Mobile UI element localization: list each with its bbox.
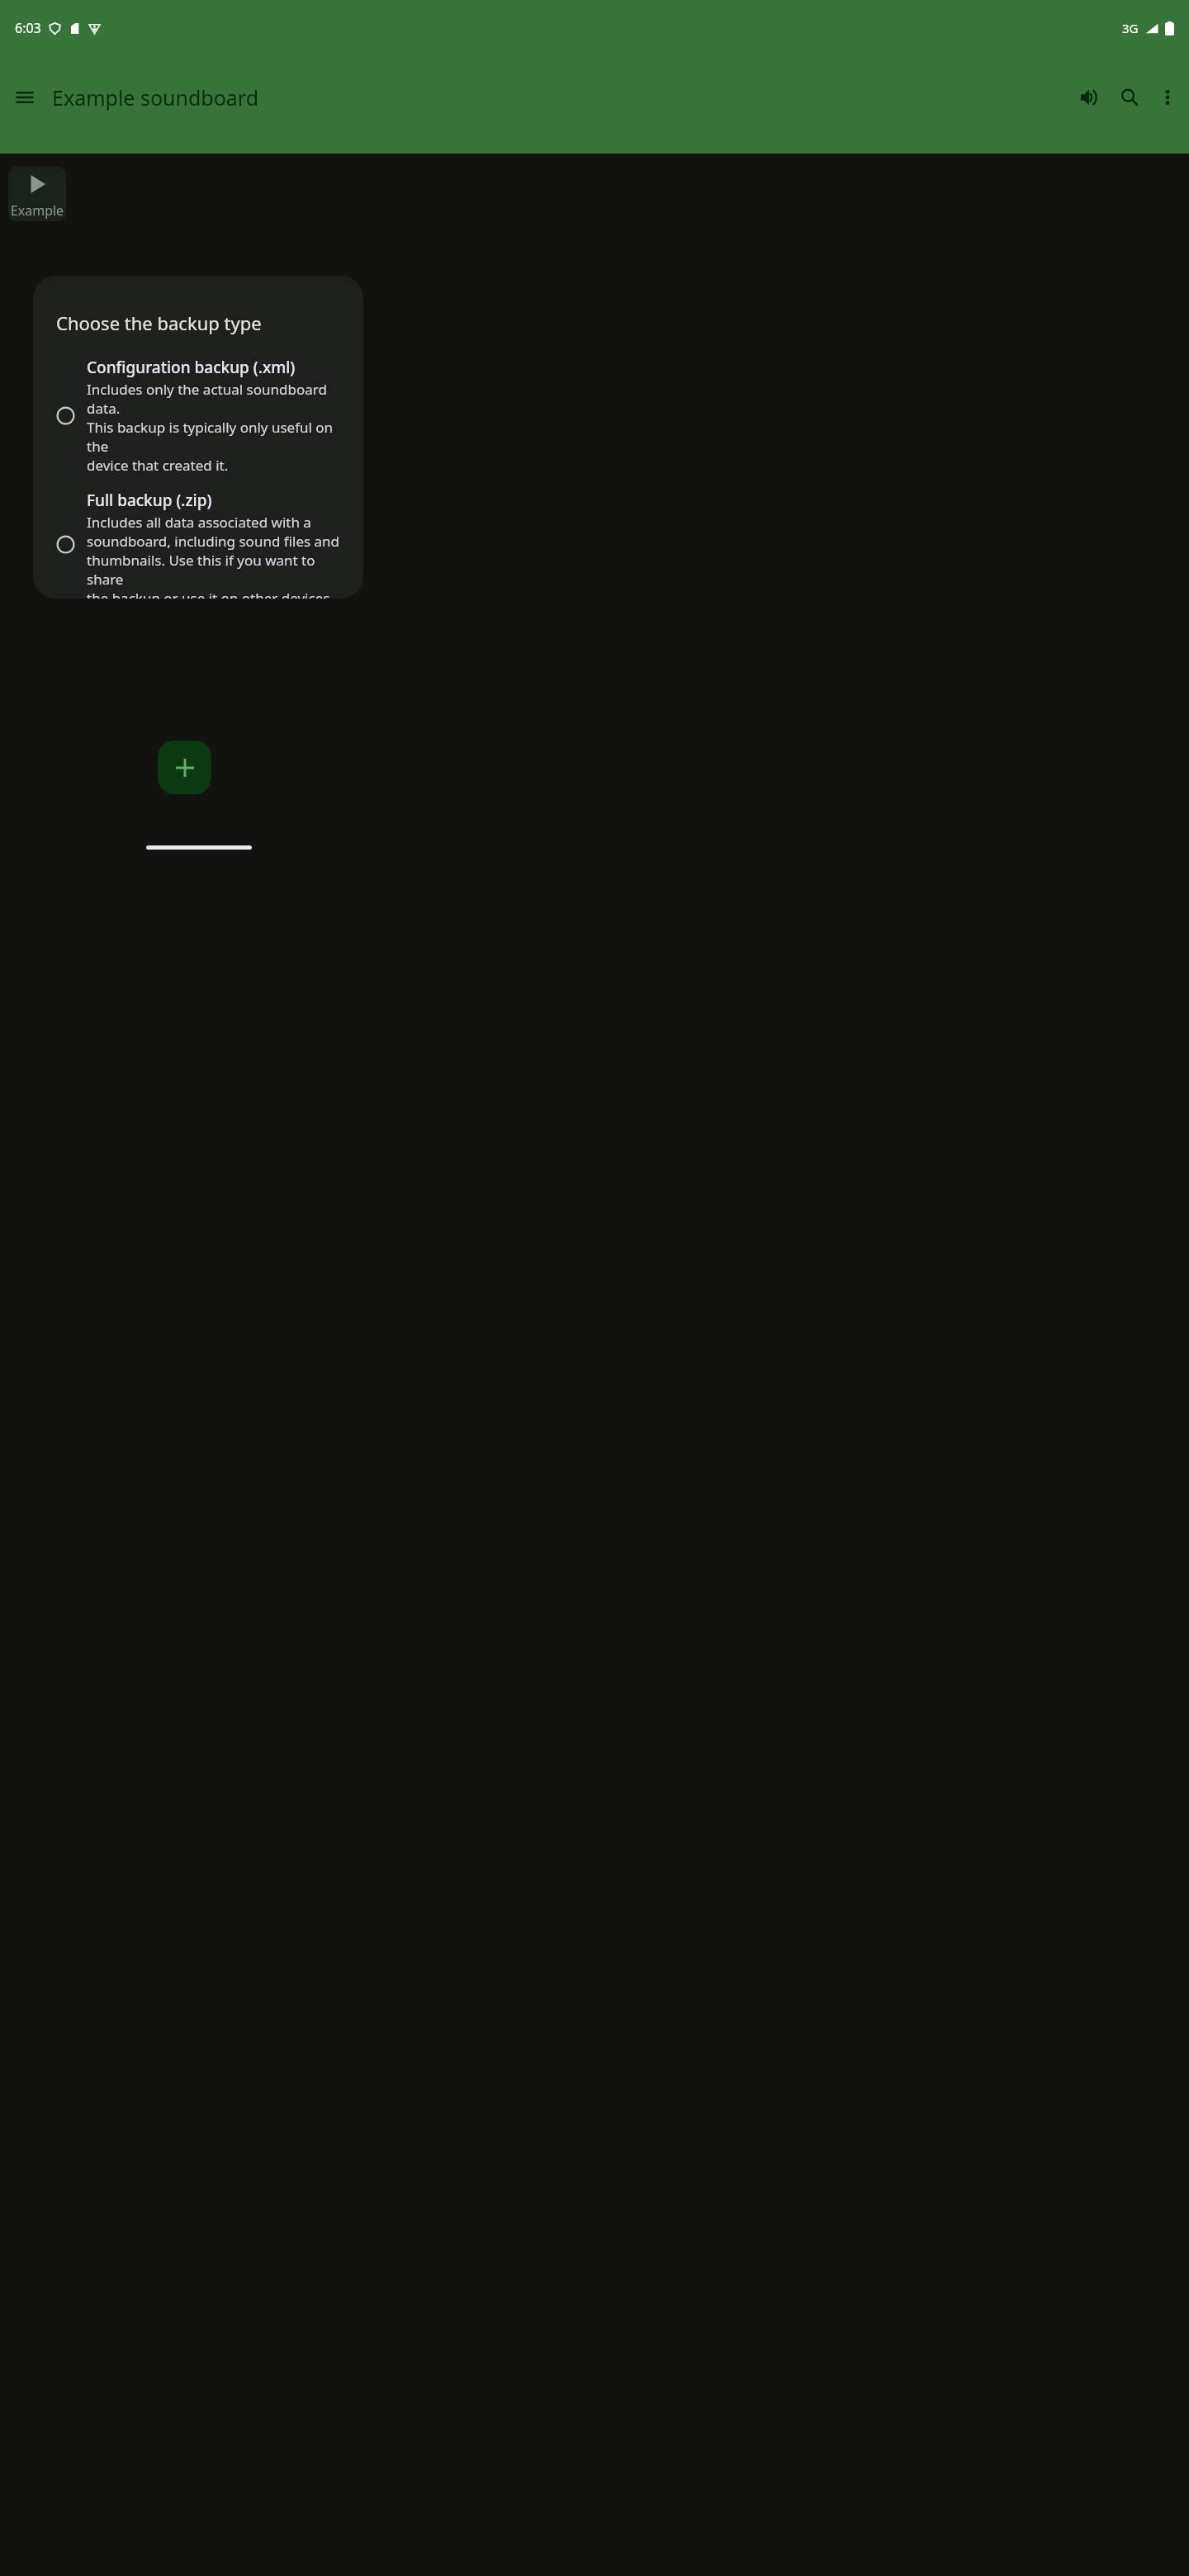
staticText: Example sound [8,201,66,221]
button[interactable]: Configuration backup (.xml) [33,357,363,475]
staticText: Example soundboard [52,83,1070,111]
button[interactable]: Search [1110,78,1149,117]
staticText: Configuration backup (.xml) [87,357,296,378]
staticText: Full backup (.zip) [87,490,212,511]
staticText: 3G [1122,20,1139,36]
button[interactable]: More options [1149,78,1186,117]
staticText: Includes all data associated with a soun… [87,513,347,599]
staticText: Includes only the actual soundboard data… [87,380,347,475]
button[interactable]: Add [158,741,211,794]
button[interactable]: Full backup (.zip) [33,490,363,599]
button[interactable]: Menu [5,78,45,117]
staticText: 6:03 [15,19,41,37]
button[interactable]: Volume [1070,78,1110,117]
staticText: Choose the backup type [56,310,262,335]
button[interactable]: Example sound [8,167,66,221]
